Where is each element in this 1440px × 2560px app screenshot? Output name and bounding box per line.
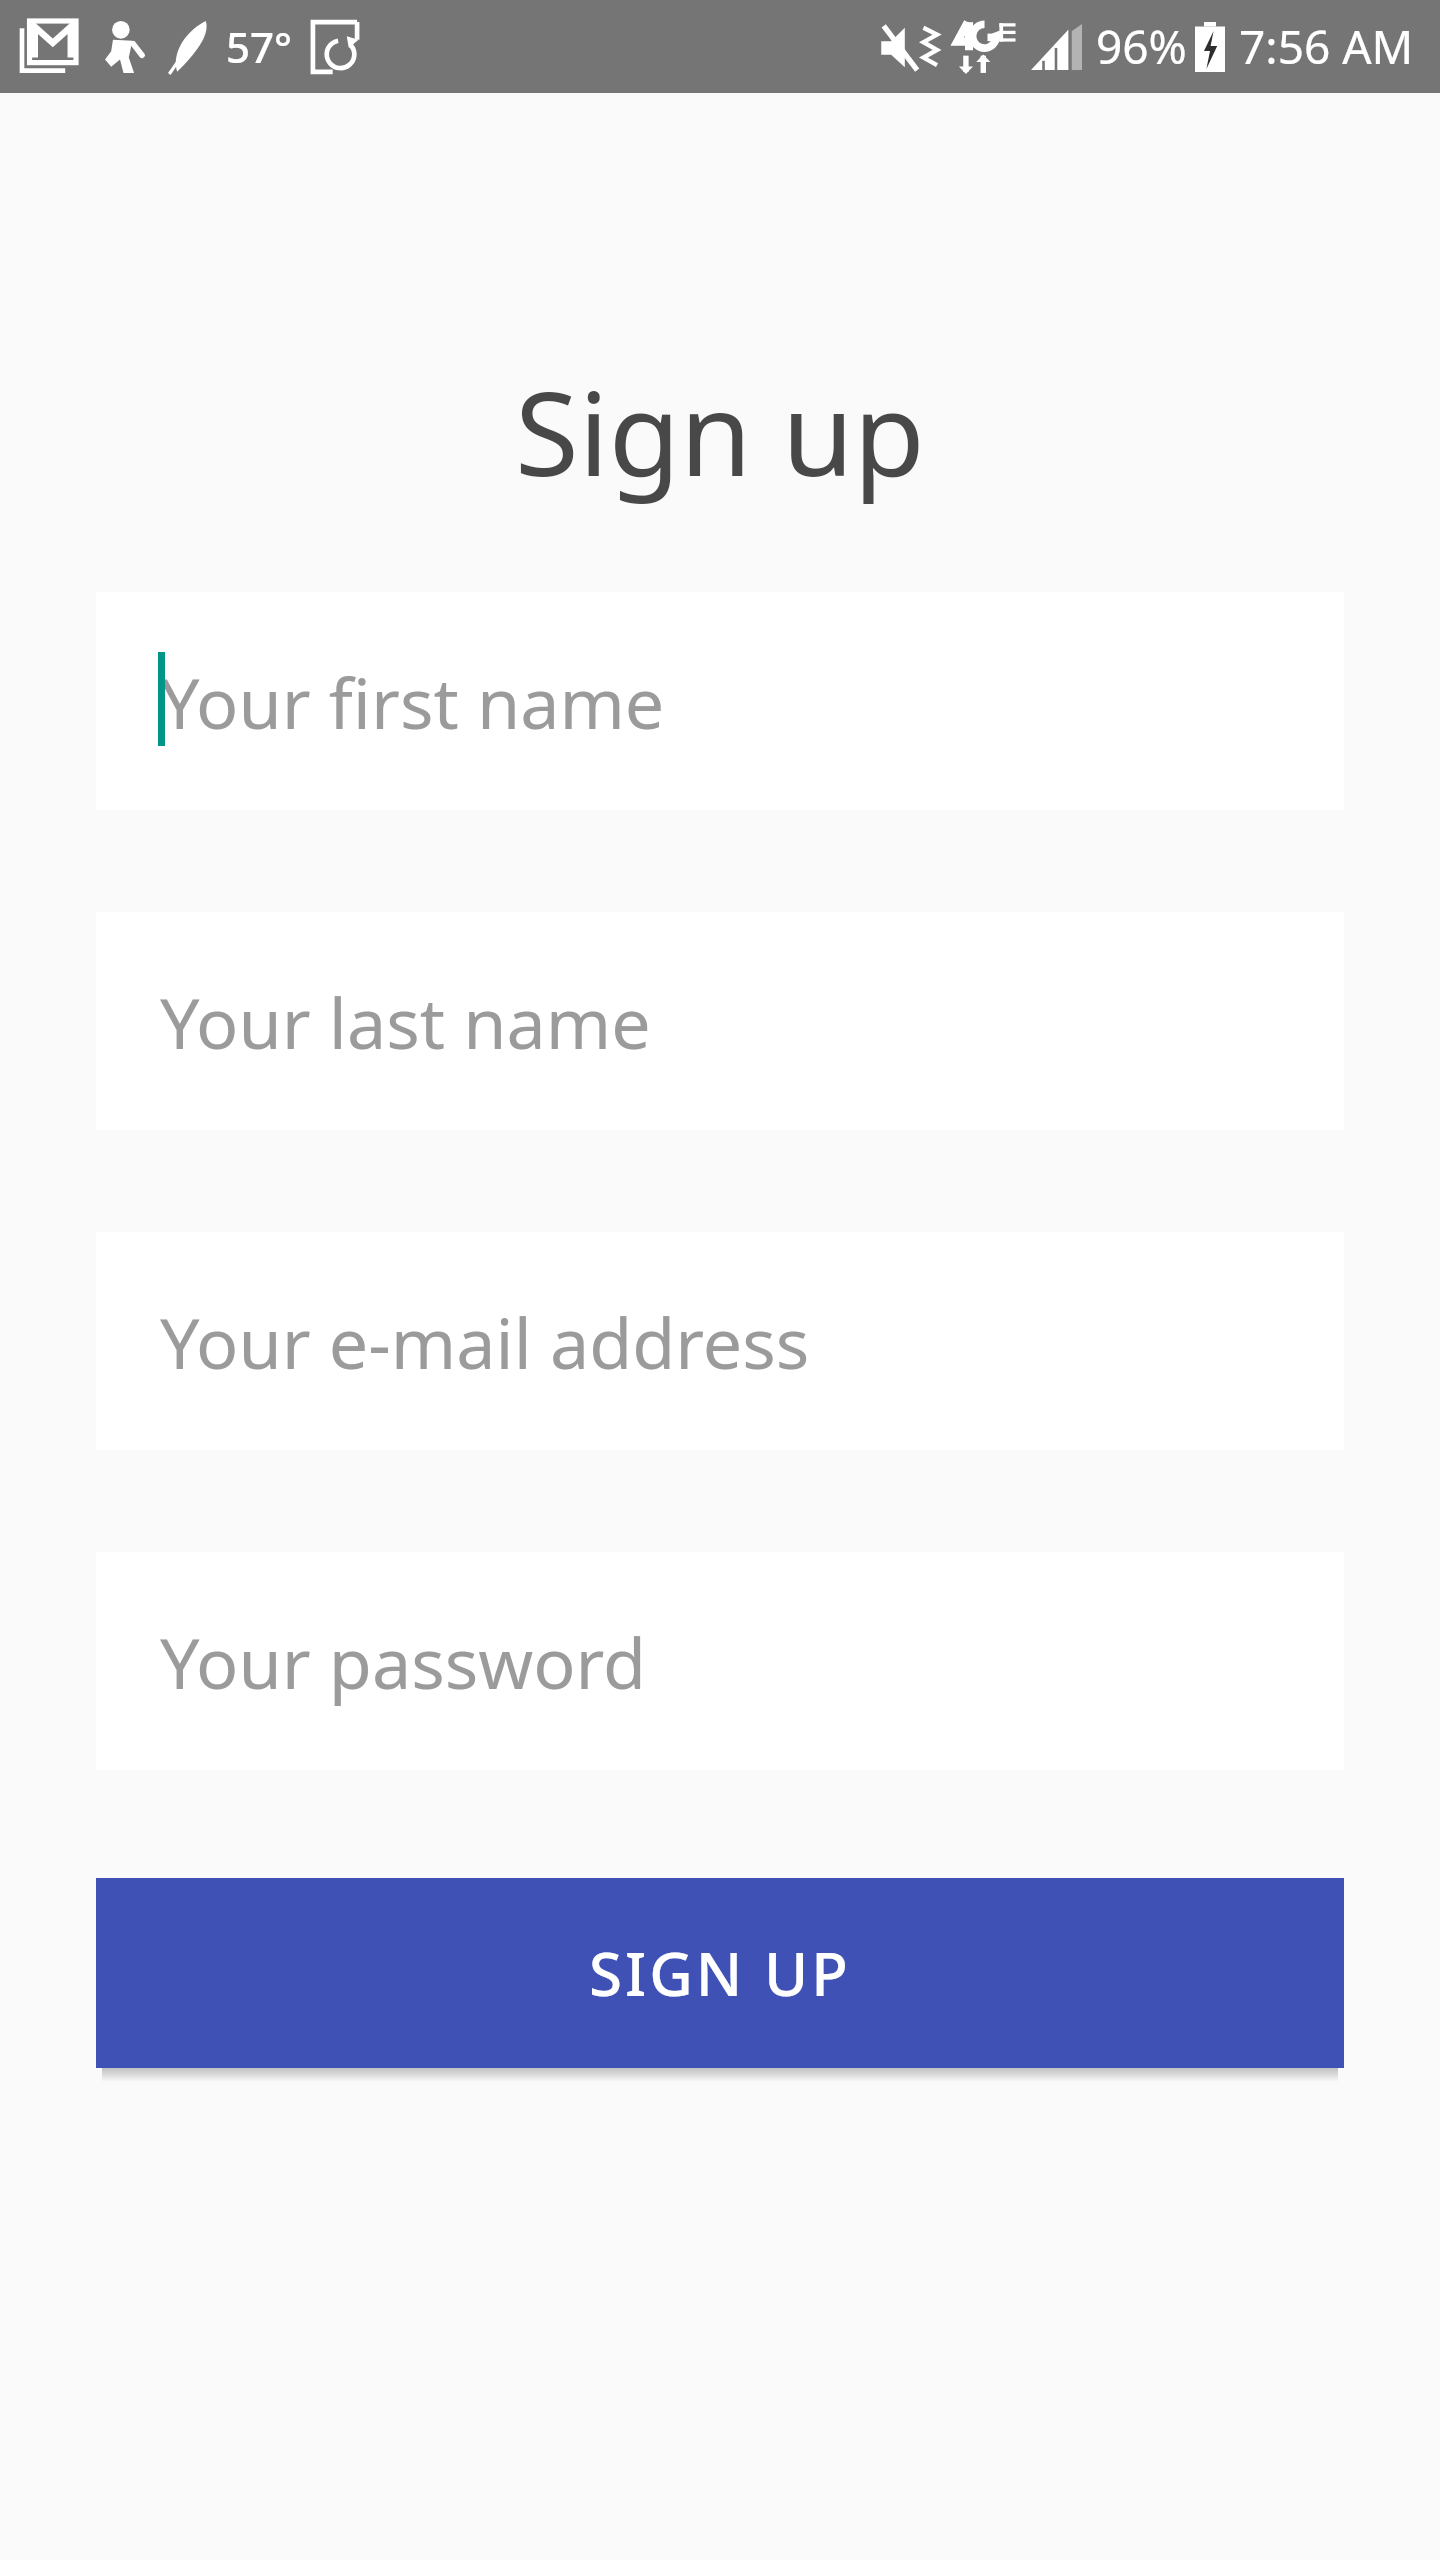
button[interactable]: Your password (96, 1552, 1344, 1770)
staticText: 96% (1096, 15, 1187, 78)
staticText: 57° (226, 18, 292, 75)
button[interactable]: Your e-mail address (96, 1232, 1344, 1450)
button[interactable]: Your last name (96, 912, 1344, 1130)
button[interactable]: Your first name (96, 592, 1344, 810)
staticText: Your password (160, 1614, 647, 1709)
staticText: SIGN UP (589, 1932, 851, 2014)
staticText: Your last name (160, 974, 651, 1069)
staticText: Sign up (0, 352, 1440, 510)
staticText: Your e-mail address (160, 1294, 810, 1389)
button[interactable]: SIGN UP (96, 1878, 1344, 2068)
staticText: 7:56 AM (1239, 15, 1414, 78)
staticText: Your first name (160, 654, 665, 749)
